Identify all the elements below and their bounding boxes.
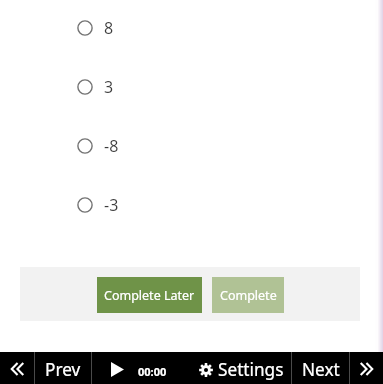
button[interactable]: Complete [212, 277, 284, 313]
staticText: Complete Later [104, 287, 195, 304]
button[interactable]: Prev [35, 352, 91, 384]
button[interactable]: -3 [0, 175, 383, 234]
staticText: Prev [45, 358, 81, 381]
staticText: Complete [220, 287, 277, 304]
button[interactable]: 8 [0, 0, 383, 57]
staticText: Next [302, 358, 340, 381]
staticText: -8 [104, 135, 119, 157]
button[interactable]: Complete Later [97, 277, 202, 313]
button[interactable]: First page [0, 352, 34, 384]
staticText: 3 [104, 76, 114, 98]
staticText: Settings [218, 358, 284, 381]
button[interactable]: Last page [350, 352, 383, 384]
button[interactable]: Play audio [108, 356, 167, 380]
button[interactable]: 3 [0, 57, 383, 116]
button[interactable]: Next [292, 352, 349, 384]
staticText: 00:00 [138, 364, 167, 379]
button[interactable]: -8 [0, 116, 383, 175]
button[interactable]: Settings [199, 357, 284, 380]
staticText: -3 [104, 194, 119, 216]
staticText: 8 [104, 17, 114, 39]
